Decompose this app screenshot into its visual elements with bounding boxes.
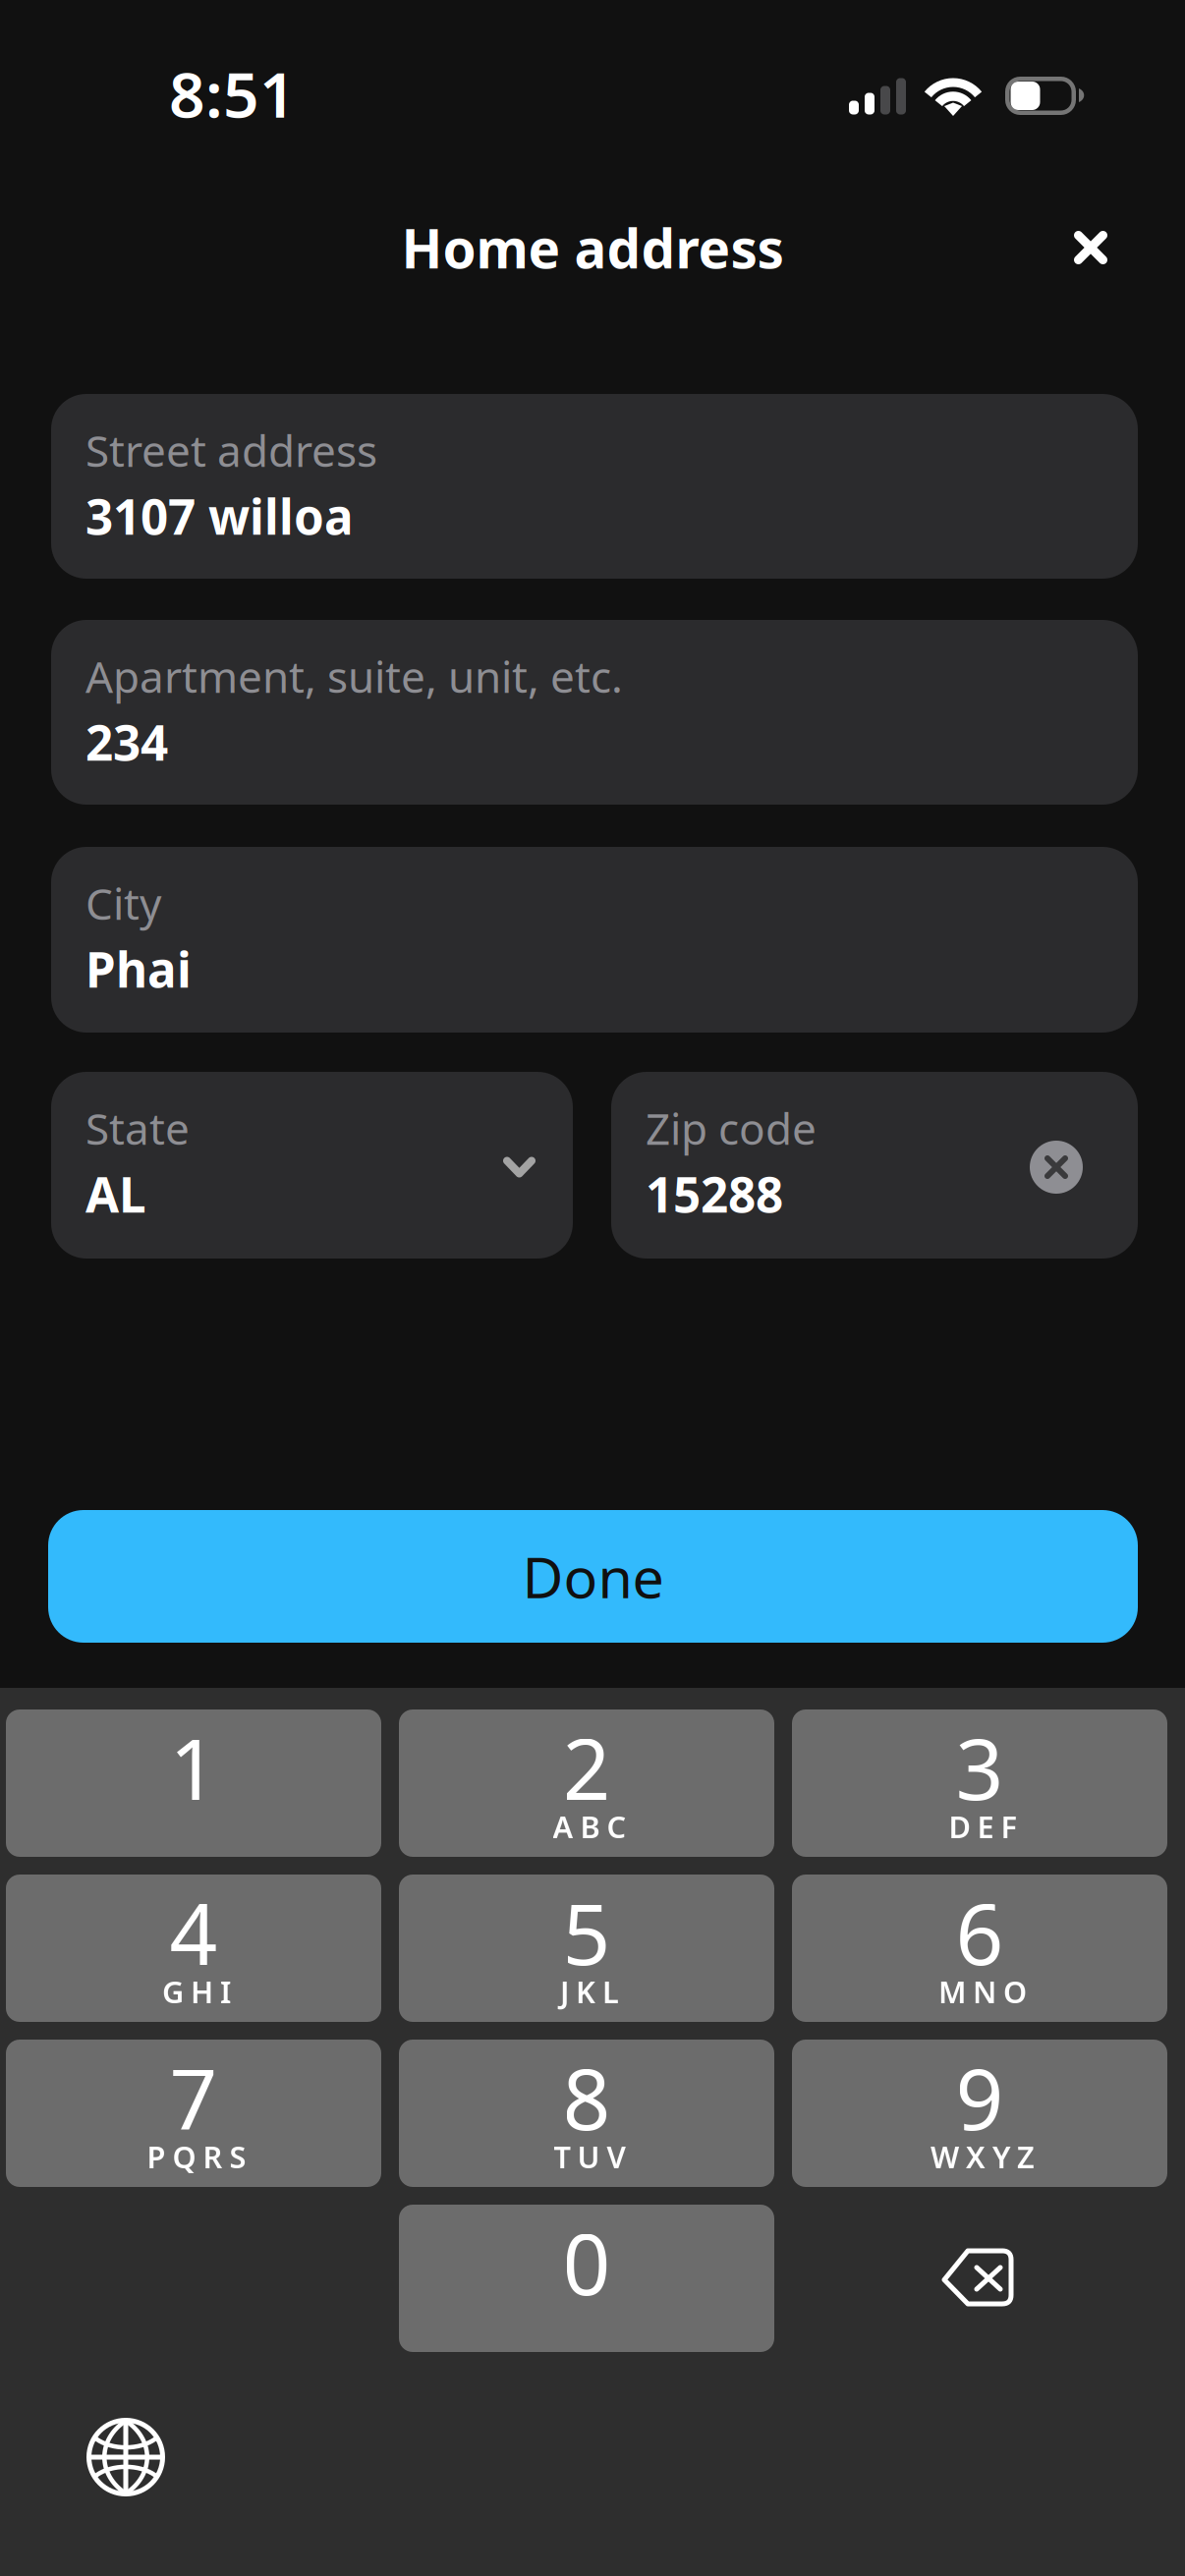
staticText: Zip code [646, 1099, 817, 1157]
staticText: Done [522, 1539, 664, 1614]
staticText: JKL [560, 1971, 619, 2011]
staticText: 8:51 [169, 52, 296, 135]
button[interactable]: Switch keyboard [86, 2418, 165, 2496]
staticText: 4 [169, 1877, 218, 1988]
staticText: WXYZ [931, 2136, 1035, 2176]
staticText: TUV [554, 2136, 625, 2176]
staticText: PQRS [147, 2136, 246, 2176]
button[interactable]: 6 [792, 1875, 1167, 2022]
staticText: State [85, 1099, 190, 1157]
staticText: 1 [169, 1712, 218, 1823]
staticText: 3 [956, 1712, 1004, 1823]
staticText: DEF [949, 1806, 1016, 1846]
button[interactable]: Close [1047, 204, 1134, 291]
staticText: AL [85, 1162, 146, 1226]
button[interactable]: 9 [792, 2040, 1167, 2187]
staticText: Phai [85, 937, 192, 1001]
staticText: Street address [85, 421, 377, 479]
button[interactable]: 8 [399, 2040, 774, 2187]
button[interactable]: 5 [399, 1875, 774, 2022]
staticText: GHI [162, 1971, 231, 2011]
button[interactable]: Done [48, 1510, 1138, 1643]
staticText: 3107 willoa [85, 484, 354, 548]
staticText: 15288 [646, 1162, 783, 1226]
staticText: 5 [563, 1877, 611, 1988]
staticText: Home address [401, 212, 784, 283]
button[interactable]: 7 [6, 2040, 381, 2187]
button[interactable]: Delete [940, 2248, 1017, 2307]
staticText: 234 [85, 710, 168, 774]
button[interactable]: 0 [399, 2205, 774, 2352]
button[interactable]: 3 [792, 1709, 1167, 1857]
staticText: 8 [563, 2042, 611, 2153]
staticText: City [85, 874, 161, 932]
button[interactable]: 2 [399, 1709, 774, 1857]
staticText: 6 [956, 1877, 1004, 1988]
staticText: MNO [938, 1971, 1027, 2011]
staticText: Apartment, suite, unit, etc. [85, 647, 623, 705]
staticText: 2 [563, 1712, 611, 1823]
staticText: ABC [553, 1806, 626, 1846]
button[interactable]: 1 [6, 1709, 381, 1857]
button[interactable]: 4 [6, 1875, 381, 2022]
staticText: 9 [956, 2042, 1004, 2153]
staticText: 7 [169, 2042, 218, 2153]
staticText: 0 [563, 2207, 611, 2318]
